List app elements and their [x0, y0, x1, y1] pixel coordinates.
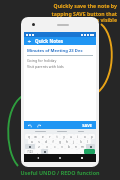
button[interactable]: h [63, 139, 70, 144]
staticText: f [52, 140, 54, 144]
button[interactable]: . [77, 149, 84, 154]
staticText: tapping SAVE button that always visible [37, 10, 117, 24]
staticText: Quick Notes [35, 38, 64, 44]
button[interactable]: i [74, 134, 81, 139]
button[interactable]: a [28, 139, 35, 144]
staticText: , [37, 150, 38, 154]
button[interactable]: d [42, 139, 49, 144]
staticText: i [77, 135, 78, 139]
staticText: s [38, 140, 40, 144]
button[interactable]: Undo [27, 123, 32, 128]
staticText: Useful UNDO / REDO function [20, 169, 100, 176]
staticText: z [38, 145, 40, 149]
button[interactable]: Send [84, 149, 95, 154]
staticText: ?123 [27, 150, 33, 154]
staticText: x [46, 145, 48, 149]
button[interactable]: j [70, 139, 77, 144]
button[interactable]: m [79, 144, 86, 149]
staticText: Quickly save the note by [53, 2, 117, 9]
button[interactable]: s [35, 139, 42, 144]
button[interactable]: Recents [80, 156, 84, 160]
button[interactable] [25, 144, 35, 149]
staticText: c [54, 145, 56, 149]
button[interactable]: e [39, 134, 46, 139]
button[interactable]: t [53, 134, 60, 139]
staticText: g [59, 140, 61, 144]
button[interactable]: w [32, 134, 39, 139]
staticText: l [87, 140, 88, 144]
button[interactable]: r [46, 134, 53, 139]
button[interactable]: q [25, 134, 32, 139]
staticText: h [66, 140, 68, 144]
staticText: j [73, 140, 74, 144]
staticText: p [91, 135, 93, 139]
button[interactable]: g [56, 139, 63, 144]
staticText: SAVE [82, 123, 92, 128]
button[interactable]: p [88, 134, 95, 139]
button[interactable]: v [58, 144, 65, 149]
staticText: o [84, 135, 86, 139]
button[interactable]: Back [36, 156, 40, 160]
staticText: y [63, 135, 65, 139]
button[interactable]: o [81, 134, 88, 139]
button[interactable] [86, 144, 95, 149]
staticText: b [68, 145, 70, 149]
staticText: Going for holiday [27, 58, 57, 63]
button[interactable]: Back [27, 39, 32, 44]
button[interactable]: Undo [24, 121, 96, 129]
button[interactable]: Redo [36, 123, 41, 128]
staticText: e [42, 135, 44, 139]
button[interactable]: y [60, 134, 67, 139]
staticText: t [56, 135, 58, 139]
staticText: q [28, 135, 30, 139]
button[interactable]: f [49, 139, 56, 144]
staticText: d [45, 140, 47, 144]
button[interactable]: l [84, 139, 91, 144]
button[interactable]: z [35, 144, 43, 149]
button[interactable]: SAVE [81, 123, 93, 128]
staticText: . [80, 150, 81, 154]
staticText: m [81, 145, 84, 149]
button[interactable]: ?123 [25, 149, 34, 154]
button[interactable]: , [34, 149, 41, 154]
staticText: Visit parents with kids [27, 64, 64, 69]
button[interactable]: x [43, 144, 51, 149]
staticText: n [75, 145, 77, 149]
staticText: v [61, 145, 63, 149]
staticText: a [31, 140, 33, 144]
button[interactable]: b [65, 144, 72, 149]
button[interactable] [41, 149, 48, 154]
button[interactable]: Back [24, 37, 96, 45]
staticText: r [49, 135, 51, 139]
staticText: u [70, 135, 72, 139]
button[interactable]: u [67, 134, 74, 139]
button[interactable]: k [77, 139, 84, 144]
button[interactable]: n [72, 144, 79, 149]
staticText: Minutes of Meeting 23 Dec [27, 48, 83, 54]
staticText: k [80, 140, 82, 144]
button[interactable]: Home [58, 156, 62, 160]
staticText: w [34, 135, 37, 139]
button[interactable]: c [51, 144, 58, 149]
